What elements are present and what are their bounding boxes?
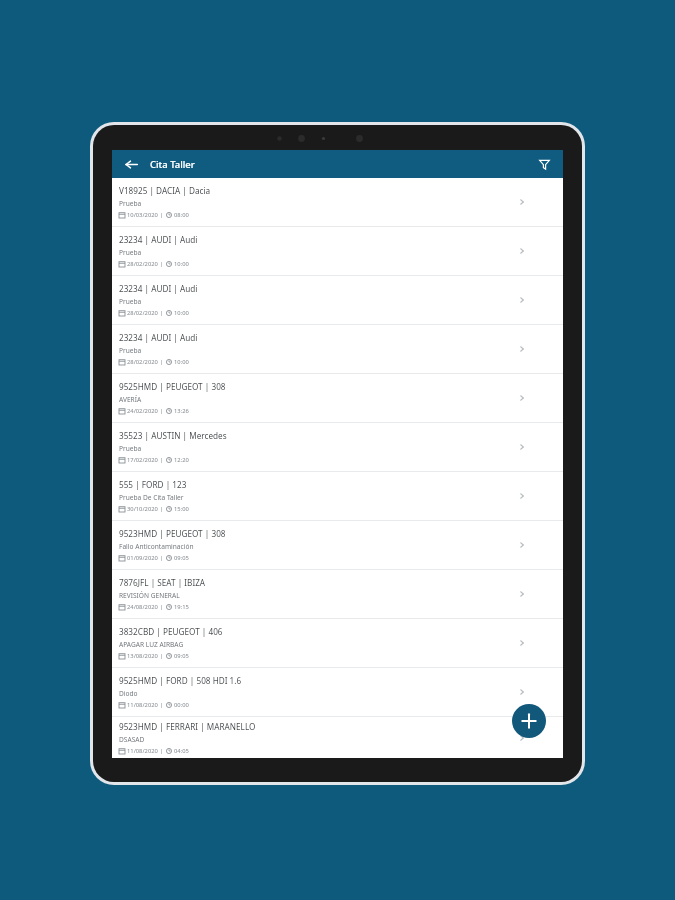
staticText: 35523 | AUSTIN | Mercedes (119, 430, 227, 441)
staticText: | (160, 652, 164, 660)
staticText: 9523HMD | FERRARI | MARANELLO (119, 721, 256, 732)
button[interactable]: 9525HMD | FORD | 508 HDI 1.6 (112, 668, 563, 716)
staticText: 9525HMD | FORD | 508 HDI 1.6 (119, 675, 242, 686)
staticText: 10:00 (174, 358, 189, 366)
staticText: 09:05 (174, 652, 189, 660)
staticText: Diodo (119, 689, 138, 698)
staticText: Prueba De Cita Taller (119, 493, 184, 502)
button[interactable]: 35523 | AUSTIN | Mercedes (112, 423, 563, 471)
staticText: | (160, 407, 164, 415)
staticText: | (160, 358, 164, 366)
staticText: Prueba (119, 346, 142, 355)
staticText: 9523HMD | PEUGEOT | 308 (119, 528, 226, 539)
button[interactable]: 3832CBD | PEUGEOT | 406 (112, 619, 563, 667)
button[interactable]: V18925 | DACIA | Dacia (112, 178, 563, 226)
staticText: DSASAD (119, 735, 145, 744)
button[interactable]: 9523HMD | PEUGEOT | 308 (112, 521, 563, 569)
staticText: 23234 | AUDI | Audi (119, 234, 198, 245)
staticText: 28/02/2020 (127, 260, 158, 268)
staticText: Cita Taller (150, 158, 195, 171)
button[interactable]: 23234 | AUDI | Audi (112, 325, 563, 373)
button[interactable]: 9525HMD | PEUGEOT | 308 (112, 374, 563, 422)
staticText: 555 | FORD | 123 (119, 479, 187, 490)
staticText: 08:00 (174, 211, 189, 219)
staticText: REVISIÓN GENERAL (119, 591, 180, 600)
button[interactable]: Atrás (121, 154, 141, 174)
staticText: 28/02/2020 (127, 358, 158, 366)
button[interactable]: Filtrar (534, 154, 554, 174)
staticText: | (160, 260, 164, 268)
staticText: Prueba (119, 444, 142, 453)
staticText: 10:00 (174, 260, 189, 268)
staticText: Prueba (119, 297, 142, 306)
staticText: Prueba (119, 248, 142, 257)
staticText: | (160, 505, 164, 513)
button[interactable]: 7876JFL | SEAT | IBIZA (112, 570, 563, 618)
staticText: | (160, 603, 164, 611)
staticText: Prueba (119, 199, 142, 208)
staticText: 11/08/2020 (127, 747, 158, 755)
staticText: | (160, 456, 164, 464)
staticText: 10:00 (174, 309, 189, 317)
staticText: 17/02/2020 (127, 456, 158, 464)
button[interactable]: 23234 | AUDI | Audi (112, 227, 563, 275)
staticText: | (160, 554, 164, 562)
staticText: AVERÍA (119, 395, 142, 404)
staticText: V18925 | DACIA | Dacia (119, 185, 211, 196)
staticText: 09:05 (174, 554, 189, 562)
staticText: 13/08/2020 (127, 652, 158, 660)
button[interactable]: Añadir cita (512, 704, 546, 738)
staticText: 30/10/2020 (127, 505, 158, 513)
staticText: 24/08/2020 (127, 603, 158, 611)
staticText: Fallo Anticontaminación (119, 542, 194, 551)
staticText: 12:20 (174, 456, 189, 464)
staticText: 13:26 (174, 407, 189, 415)
staticText: 23234 | AUDI | Audi (119, 283, 198, 294)
staticText: 28/02/2020 (127, 309, 158, 317)
staticText: 00:00 (174, 701, 189, 709)
staticText: | (160, 309, 164, 317)
staticText: 19:15 (174, 603, 189, 611)
staticText: 7876JFL | SEAT | IBIZA (119, 577, 206, 588)
staticText: 11/08/2020 (127, 701, 158, 709)
staticText: 15:00 (174, 505, 189, 513)
staticText: 24/02/2020 (127, 407, 158, 415)
staticText: 23234 | AUDI | Audi (119, 332, 198, 343)
staticText: | (160, 211, 164, 219)
button[interactable]: 555 | FORD | 123 (112, 472, 563, 520)
staticText: 3832CBD | PEUGEOT | 406 (119, 626, 223, 637)
staticText: 9525HMD | PEUGEOT | 308 (119, 381, 226, 392)
staticText: 04:05 (174, 747, 189, 755)
staticText: 01/09/2020 (127, 554, 158, 562)
staticText: | (160, 747, 164, 755)
staticText: APAGAR LUZ AIRBAG (119, 640, 184, 649)
staticText: | (160, 701, 164, 709)
staticText: 10/03/2020 (127, 211, 158, 219)
button[interactable]: 23234 | AUDI | Audi (112, 276, 563, 324)
button[interactable]: 9523HMD | FERRARI | MARANELLO (112, 717, 563, 758)
